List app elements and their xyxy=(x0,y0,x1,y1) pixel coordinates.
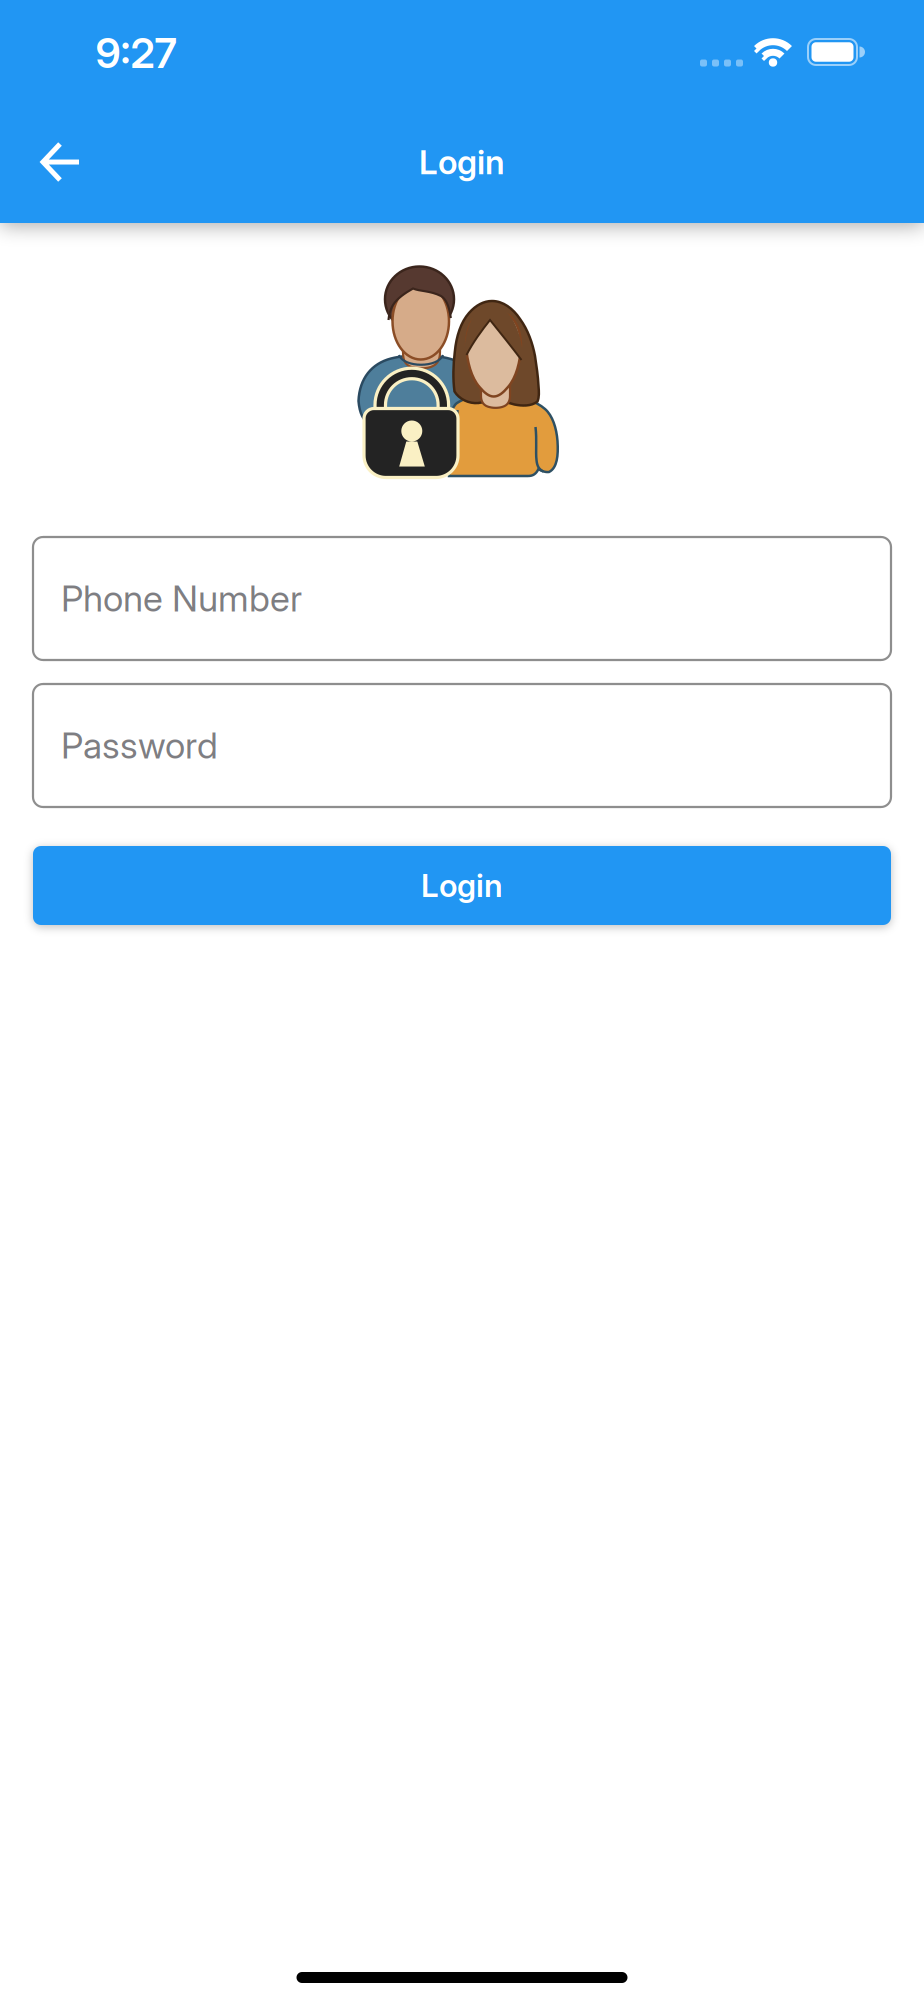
staticText: Phone Number xyxy=(61,577,302,620)
button[interactable]: Login xyxy=(33,846,891,925)
staticText: Login xyxy=(419,142,505,182)
staticText: Password xyxy=(61,724,218,767)
button[interactable]: Back xyxy=(36,137,86,187)
staticText: 9:27 xyxy=(95,28,176,78)
staticText: Login xyxy=(421,866,503,905)
